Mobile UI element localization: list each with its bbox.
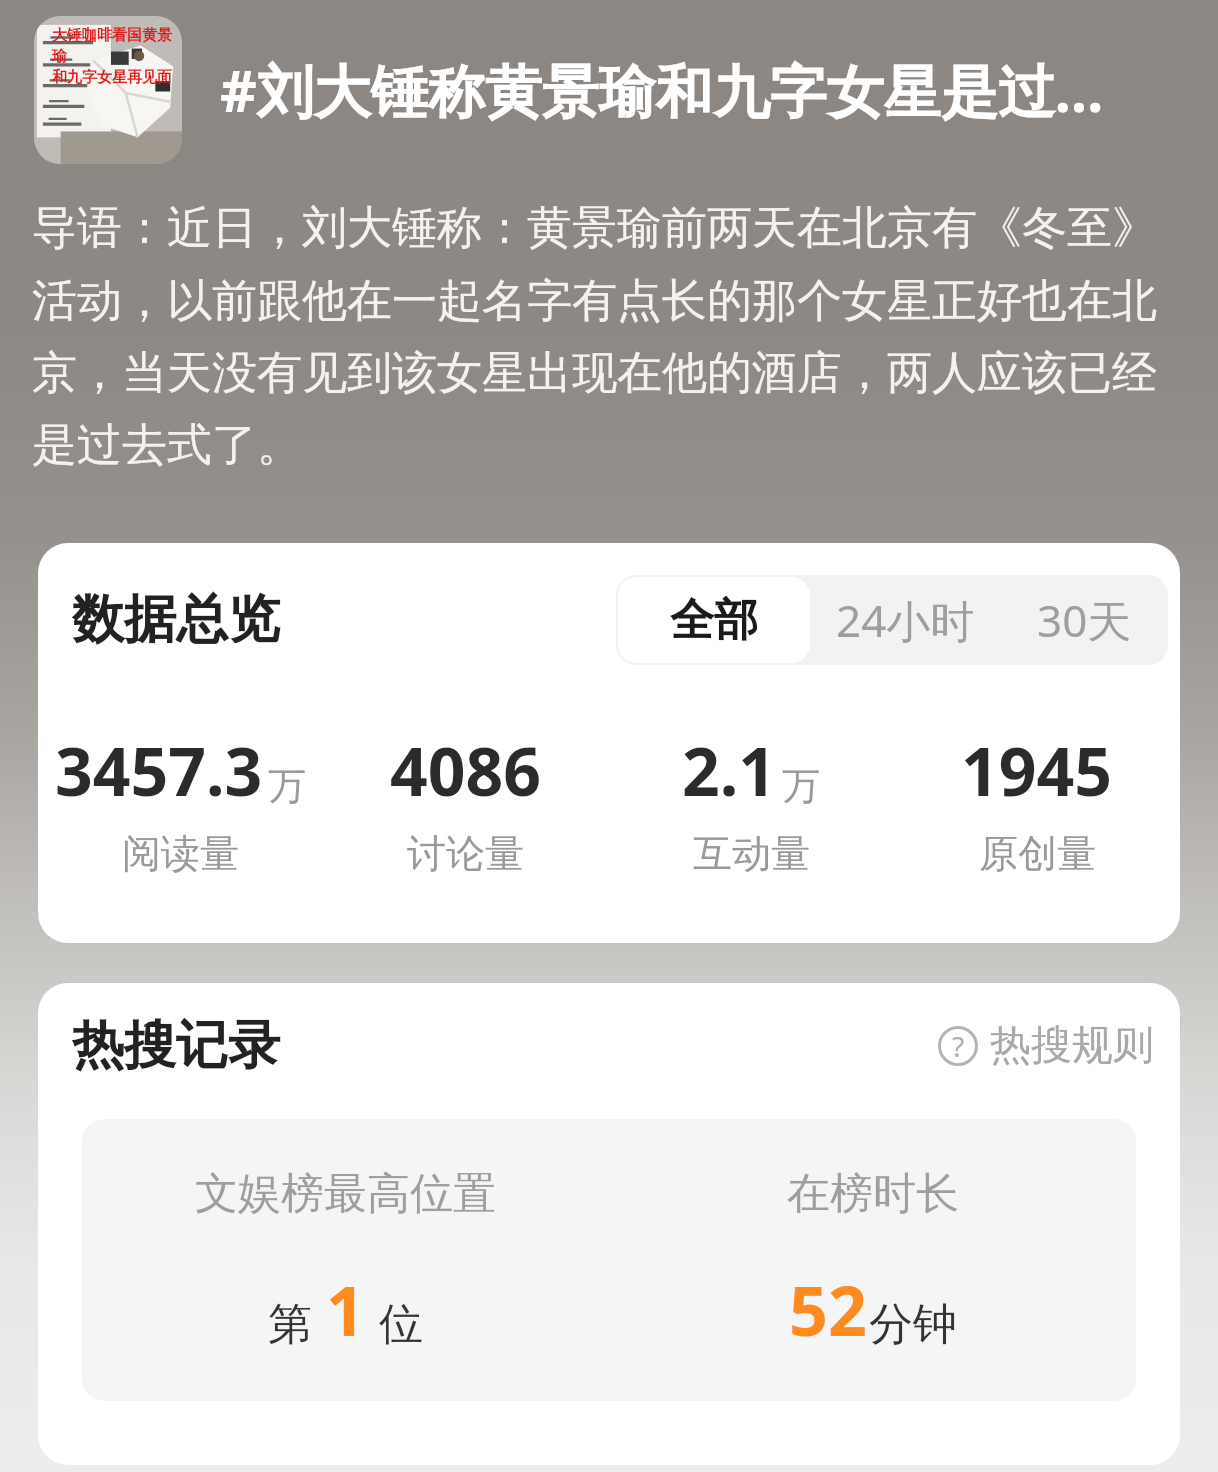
staticText: 1945 xyxy=(961,725,1113,815)
staticText: 和九字女星再见面 xyxy=(52,68,172,87)
staticText: 万 xyxy=(268,762,306,810)
staticText: 分钟 xyxy=(869,1297,957,1352)
staticText: 原创量 xyxy=(979,829,1096,878)
button[interactable]: 话题封面图 xyxy=(34,16,182,164)
staticText: 在榜时长 xyxy=(787,1167,959,1221)
button[interactable]: 热搜规则说明 xyxy=(938,1020,1154,1072)
button[interactable]: 2.1 xyxy=(608,725,894,878)
staticText: 位 xyxy=(379,1297,423,1352)
button[interactable]: 3457.3 xyxy=(38,725,323,878)
button[interactable]: 30天 xyxy=(1000,575,1168,665)
staticText: 第 xyxy=(268,1297,312,1352)
button[interactable]: 1945 xyxy=(894,725,1180,878)
other: 热搜规则说明 xyxy=(938,1026,978,1066)
staticText: 1 xyxy=(326,1263,365,1356)
staticText: 讨论量 xyxy=(407,829,524,878)
staticText: 万 xyxy=(782,762,820,810)
staticText: 导语：近日，刘大锤称：黄景瑜前两天在北京有《冬至》活动，以前跟他在一起名字有点长… xyxy=(32,200,1188,473)
staticText: 文娱榜最高位置 xyxy=(195,1167,496,1221)
staticText: #刘大锤称黄景瑜和九字女星是过… xyxy=(220,51,1104,129)
staticText: 全部 xyxy=(670,593,758,648)
button[interactable]: 4086 xyxy=(323,725,608,878)
button[interactable]: 在榜时长 xyxy=(609,1119,1136,1356)
staticText: 3457.3 xyxy=(55,725,263,815)
staticText: 大锤咖啡看国黄景瑜 xyxy=(52,26,176,66)
staticText: 4086 xyxy=(390,725,542,815)
staticText: 互动量 xyxy=(693,829,810,878)
staticText: 热搜规则 xyxy=(990,1020,1154,1072)
staticText: 2.1 xyxy=(682,725,777,815)
staticText: 24小时 xyxy=(836,590,975,650)
staticText: 52 xyxy=(789,1263,867,1356)
button[interactable]: 24小时 xyxy=(810,575,1000,665)
staticText: 30天 xyxy=(1037,590,1132,650)
button[interactable]: 全部 xyxy=(618,577,810,663)
staticText: ? xyxy=(952,1027,965,1065)
staticText: 数据总览 xyxy=(72,587,280,653)
button[interactable]: 话题封面图 xyxy=(34,16,1190,164)
staticText: 阅读量 xyxy=(122,829,239,878)
button[interactable]: 文娱榜最高位置 xyxy=(82,1119,609,1356)
staticText: 热搜记录 xyxy=(72,1013,280,1079)
